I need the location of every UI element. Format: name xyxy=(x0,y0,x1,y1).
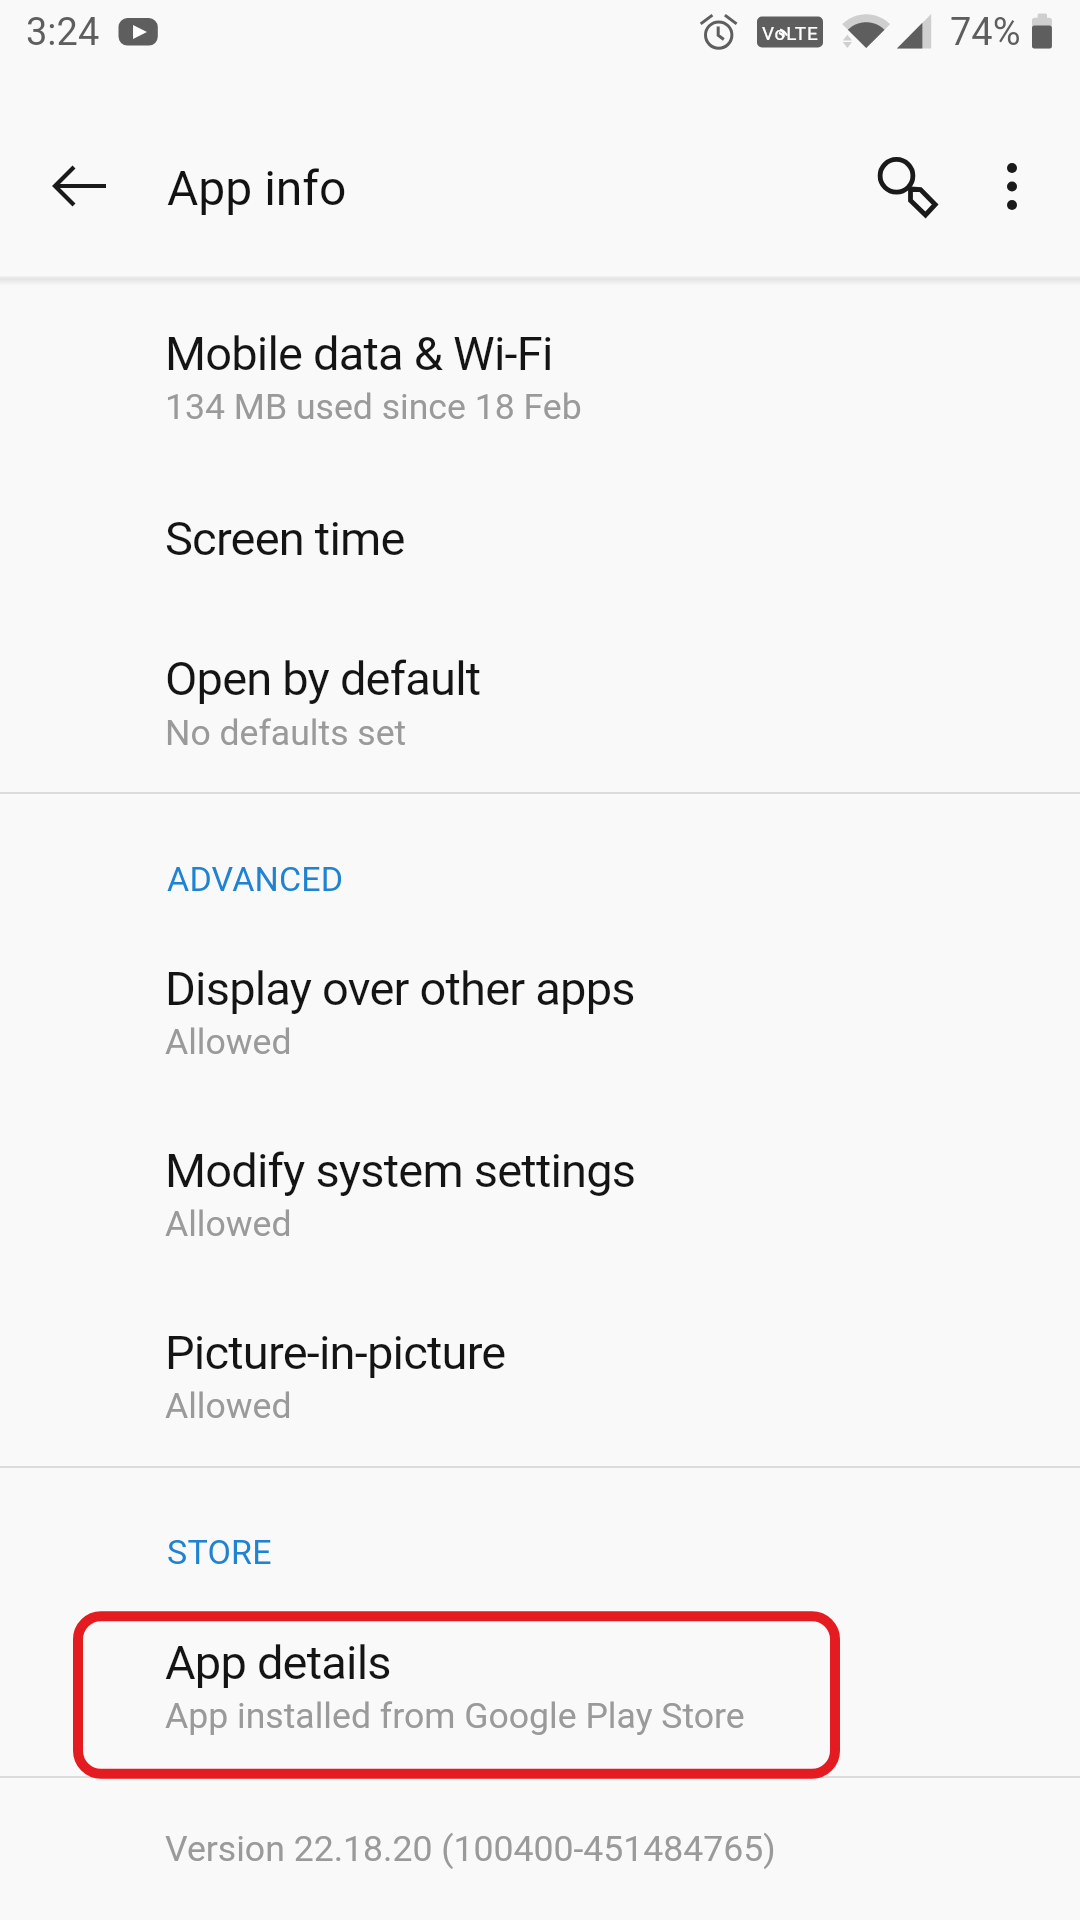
staticText: 74% xyxy=(950,10,1021,55)
staticText: 134 MB used since 18 Feb xyxy=(165,386,582,428)
staticText: Picture-in-picture xyxy=(165,1325,506,1380)
staticText: STORE xyxy=(167,1532,272,1572)
staticText: Modify system settings xyxy=(165,1143,636,1198)
button[interactable]: Modify system settings xyxy=(0,1103,1080,1285)
button[interactable]: Navigate up xyxy=(38,138,134,234)
button[interactable]: App details xyxy=(0,1595,1080,1774)
staticText: Allowed xyxy=(165,1385,292,1427)
staticText: App installed from Google Play Store xyxy=(165,1695,745,1737)
staticText: No defaults set xyxy=(165,712,407,754)
staticText: Display over other apps xyxy=(165,961,635,1016)
staticText: ADVANCED xyxy=(167,859,344,899)
staticText: App details xyxy=(165,1635,391,1690)
staticText: App info xyxy=(167,160,347,216)
button[interactable]: Open by default xyxy=(0,606,1080,790)
staticText: Open by default xyxy=(165,651,481,706)
button[interactable]: Mobile data & Wi-Fi xyxy=(0,287,1080,466)
staticText: 3:24 xyxy=(26,10,100,55)
staticText: VoLTE xyxy=(762,22,819,44)
staticText: Screen time xyxy=(165,511,405,566)
staticText: Allowed xyxy=(165,1021,292,1063)
button[interactable]: More options xyxy=(964,138,1060,234)
button[interactable]: Search xyxy=(848,128,944,224)
button[interactable]: Display over other apps xyxy=(0,921,1080,1103)
button[interactable]: Screen time xyxy=(0,466,1080,606)
staticText: Version 22.18.20 (100400-451484765) xyxy=(165,1828,776,1870)
button[interactable]: Picture-in-picture xyxy=(0,1285,1080,1464)
staticText: Mobile data & Wi-Fi xyxy=(165,326,553,381)
staticText: Allowed xyxy=(165,1203,292,1245)
